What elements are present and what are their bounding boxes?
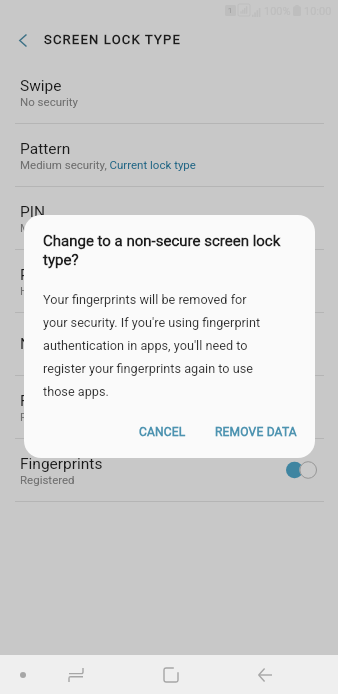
button[interactable]: Fingerprints [0, 439, 338, 501]
button[interactable]: Recent apps [57, 656, 95, 694]
button[interactable]: Swipe [0, 61, 338, 123]
button[interactable]: None [0, 313, 338, 375]
staticText: Change to a non-secure screen lock type? [43, 232, 281, 268]
button[interactable]: REMOVE DATA [215, 418, 297, 446]
staticText: High security [20, 284, 87, 297]
button[interactable]: Navigate up [9, 27, 36, 54]
staticText: None [20, 335, 57, 353]
staticText: Pattern [20, 140, 71, 158]
staticText: 1 [228, 6, 233, 15]
button[interactable]: Fingerprints switch [286, 461, 317, 479]
staticText: No security [20, 95, 78, 108]
staticText: Your fingerprints will be removed for yo… [43, 292, 261, 399]
button[interactable]: Home [152, 656, 190, 694]
staticText: Medium security, Current lock type [20, 158, 196, 171]
staticText: REMOVE DATA [215, 425, 297, 439]
staticText: Registered [20, 410, 75, 423]
staticText: Registered [20, 473, 75, 486]
button[interactable]: Back [246, 656, 284, 694]
staticText: Medium to high security [20, 221, 143, 234]
button[interactable]: Pattern [0, 124, 338, 186]
staticText: Swipe [20, 77, 62, 95]
button[interactable]: CANCEL [139, 418, 186, 446]
button[interactable]: PIN [0, 187, 338, 249]
staticText: 100% [264, 5, 291, 18]
staticText: PIN [20, 203, 46, 221]
staticText: Face [20, 392, 54, 410]
staticText: CANCEL [139, 425, 186, 439]
button[interactable]: Face [0, 376, 338, 438]
button[interactable]: Password [0, 250, 338, 312]
staticText: SCREEN LOCK TYPE [44, 32, 182, 47]
staticText: 10:00 [304, 5, 332, 18]
button[interactable]: Hide navigation bar [5, 657, 41, 693]
staticText: Password [20, 266, 89, 284]
staticText: Fingerprints [20, 455, 103, 473]
